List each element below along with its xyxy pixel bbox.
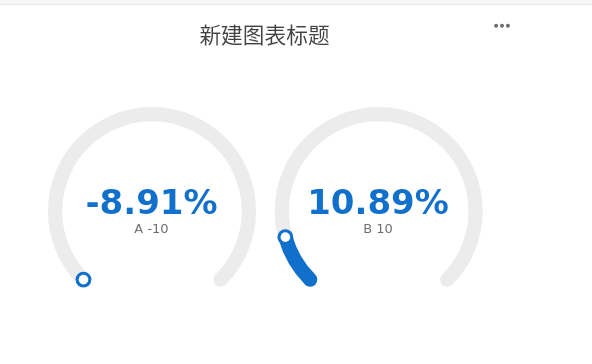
other: Gauge chart: A -8.91 percent, B 10.89 pe… bbox=[0, 0, 592, 364]
staticText: B 10 bbox=[363, 221, 393, 236]
staticText: 新建图表标题 bbox=[199, 18, 330, 49]
staticText: -8.91% bbox=[85, 182, 218, 218]
staticText: 10.89% bbox=[307, 182, 449, 218]
button[interactable]: More options bbox=[487, 12, 515, 40]
staticText: A -10 bbox=[134, 221, 169, 236]
button[interactable]: 新建图表标题 bbox=[164, 17, 364, 49]
